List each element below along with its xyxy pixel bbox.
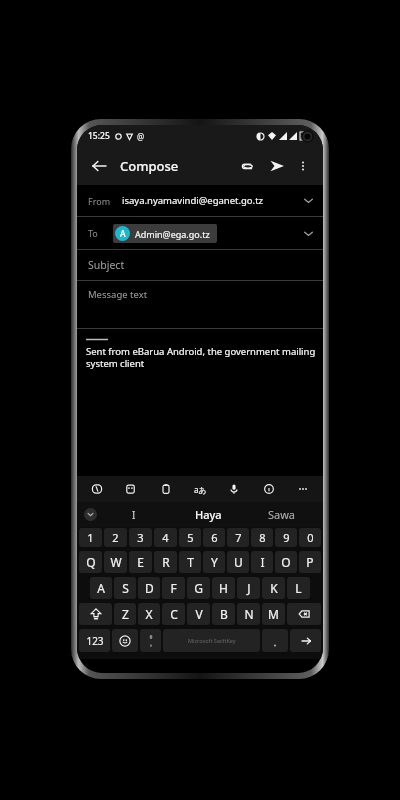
button[interactable]: K	[262, 577, 285, 599]
button[interactable]: To	[77, 217, 323, 249]
button[interactable]: Back	[86, 153, 112, 179]
button[interactable]: Punctuation	[262, 629, 288, 652]
button[interactable]: G	[187, 577, 210, 599]
staticText: 7	[235, 530, 242, 545]
button[interactable]: 7	[227, 528, 249, 547]
button[interactable]: Backspace	[287, 603, 321, 625]
button[interactable]: W	[104, 551, 127, 573]
button[interactable]: Subject	[77, 250, 323, 280]
button[interactable]: Voice	[140, 629, 161, 652]
button[interactable]: B	[212, 603, 235, 625]
button[interactable]: Haya	[171, 502, 245, 527]
button[interactable]: J	[237, 577, 260, 599]
button[interactable]: E	[129, 551, 152, 573]
button[interactable]: Z	[114, 603, 136, 625]
button[interactable]: 8	[251, 528, 273, 547]
staticText: Compose	[120, 157, 179, 175]
staticText: 4	[162, 530, 169, 545]
staticText: 6	[211, 530, 218, 545]
button[interactable]: 3	[129, 528, 152, 547]
button[interactable]: L	[287, 577, 310, 599]
button[interactable]: 9	[275, 528, 297, 547]
button[interactable]: O	[275, 551, 297, 573]
staticText: aあ	[194, 484, 207, 495]
button[interactable]: Microsoft SwiftKey	[163, 629, 260, 652]
button[interactable]: 2	[104, 528, 127, 547]
button[interactable]: Emoji	[112, 629, 138, 652]
staticText: Z	[122, 606, 129, 622]
button[interactable]: More	[292, 478, 314, 500]
staticText: V	[195, 606, 203, 622]
button[interactable]: F	[162, 577, 185, 599]
button[interactable]: Clipboard	[155, 478, 177, 500]
button[interactable]: Enter	[290, 629, 321, 652]
staticText: Sawa	[268, 507, 296, 522]
button[interactable]: Expand	[84, 508, 97, 521]
button[interactable]: T	[179, 551, 201, 573]
staticText: 1	[87, 530, 94, 545]
staticText: G	[194, 580, 203, 596]
button[interactable]: H	[212, 577, 235, 599]
button[interactable]: R	[154, 551, 177, 573]
staticText: W	[110, 554, 122, 570]
button[interactable]: Y	[203, 551, 225, 573]
staticText: From	[88, 195, 111, 207]
button[interactable]: X	[138, 603, 160, 625]
staticText: isaya.nyamavindi@eganet.go.tz	[122, 194, 264, 207]
button[interactable]: Copilot	[86, 478, 108, 500]
button[interactable]: Attach	[234, 153, 260, 179]
staticText: 3	[137, 530, 144, 545]
staticText: Y	[211, 554, 218, 570]
button[interactable]: N	[237, 603, 260, 625]
button[interactable]: Stickers	[120, 478, 142, 500]
button[interactable]: From	[77, 185, 323, 216]
staticText: J	[247, 580, 251, 596]
staticText: D	[145, 580, 154, 596]
staticText: Sent from eBarua Android, the government…	[86, 345, 323, 370]
button[interactable]: Shift	[79, 603, 112, 625]
button[interactable]: M	[262, 603, 285, 625]
button[interactable]: S	[114, 577, 136, 599]
staticText: 2	[112, 530, 119, 545]
button[interactable]: Send	[264, 153, 290, 179]
button[interactable]: P	[299, 551, 321, 573]
button[interactable]: 5	[179, 528, 201, 547]
staticText: U	[234, 554, 243, 570]
staticText: H	[219, 580, 228, 596]
button[interactable]: 123	[79, 629, 110, 652]
staticText: L	[295, 580, 302, 596]
staticText: Message text	[88, 288, 148, 301]
button[interactable]: U	[227, 551, 249, 573]
button[interactable]: Sawa	[245, 502, 319, 527]
button[interactable]: 0	[299, 528, 321, 547]
staticText: 8	[259, 530, 266, 545]
button[interactable]: Translate	[189, 478, 211, 500]
staticText: S	[122, 580, 129, 596]
button[interactable]: C	[162, 603, 185, 625]
button[interactable]: 1	[79, 528, 102, 547]
staticText: E	[137, 554, 144, 570]
staticText: Haya	[195, 507, 222, 522]
button[interactable]: I	[251, 551, 273, 573]
button[interactable]: V	[187, 603, 210, 625]
button[interactable]: 4	[154, 528, 177, 547]
staticText: 123	[86, 634, 104, 648]
button[interactable]: Q	[79, 551, 102, 573]
button[interactable]: D	[138, 577, 160, 599]
staticText: Subject	[88, 258, 125, 272]
staticText: A	[120, 228, 126, 240]
button[interactable]: I	[97, 502, 171, 527]
button[interactable]: More options	[292, 155, 314, 177]
staticText: 5	[187, 530, 194, 545]
button[interactable]: Info	[258, 478, 280, 500]
button[interactable]: Voice input	[223, 478, 245, 500]
staticText: X	[145, 606, 153, 622]
staticText: I	[260, 554, 265, 570]
button[interactable]: 6	[203, 528, 225, 547]
staticText: K	[270, 580, 278, 596]
button[interactable]: A	[90, 577, 112, 599]
staticText: T	[187, 554, 194, 570]
staticText: P	[306, 554, 314, 570]
button[interactable]: Message text	[77, 281, 323, 328]
staticText: B	[220, 606, 228, 622]
